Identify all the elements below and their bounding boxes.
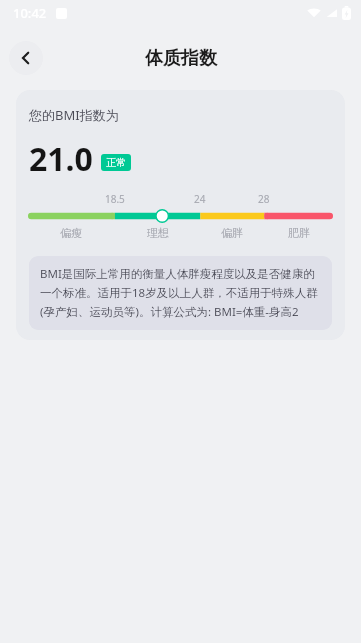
staticText: 偏胖	[221, 226, 243, 240]
staticText: 体质指数	[145, 47, 217, 70]
staticText: 28	[258, 192, 270, 206]
staticText: 正常	[106, 156, 126, 169]
staticText: 理想	[147, 226, 169, 240]
staticText: 24	[194, 192, 206, 206]
staticText: 21.0	[29, 137, 93, 181]
staticText: 10:42	[13, 4, 47, 22]
staticText: 偏瘦	[60, 226, 82, 240]
staticText: BMI是国际上常用的衡量人体胖瘦程度以及是否健康的一个标准。适用于18岁及以上人…	[40, 266, 321, 320]
staticText: 18.5	[105, 192, 125, 206]
staticText: 肥胖	[288, 226, 310, 240]
staticText: 您的BMI指数为	[29, 106, 119, 124]
button[interactable]: Back	[9, 41, 43, 75]
